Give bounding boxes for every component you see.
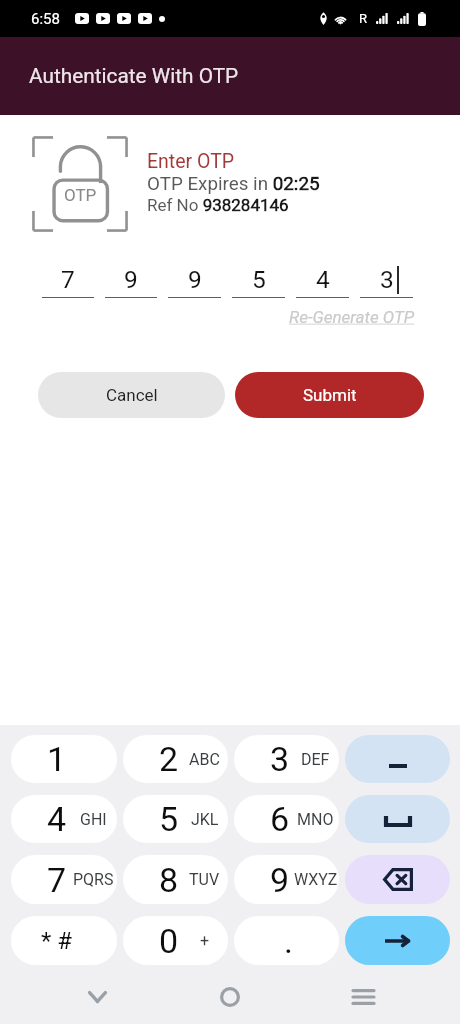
staticText: ABC	[189, 750, 220, 769]
staticText: 9	[124, 265, 138, 294]
button[interactable]: 0	[123, 916, 228, 965]
staticText: 5	[159, 799, 179, 839]
button[interactable]: 7	[11, 855, 117, 904]
button[interactable]: Enter	[345, 916, 450, 965]
staticText: OTP	[64, 185, 97, 205]
staticText: Ref No 938284146	[147, 195, 289, 215]
staticText: Enter OTP	[147, 150, 235, 173]
staticText: 8	[159, 860, 179, 900]
staticText: PQRS	[73, 870, 114, 889]
button[interactable]: Backspace	[345, 855, 450, 904]
button[interactable]: Cancel	[38, 372, 225, 418]
staticText: 0	[159, 921, 179, 961]
staticText: 5	[252, 265, 266, 294]
staticText: 9	[188, 265, 202, 294]
staticText: * #	[41, 927, 73, 955]
staticText: Submit	[303, 385, 357, 405]
button[interactable]: * #	[11, 916, 117, 965]
button[interactable]: 3	[234, 735, 339, 783]
staticText: 6	[270, 799, 290, 839]
button[interactable]: Re-Generate OTP	[289, 307, 415, 327]
button[interactable]: Home	[202, 970, 258, 1024]
button[interactable]: Authenticate With OTP	[0, 37, 460, 115]
button[interactable]: Space	[345, 795, 450, 843]
staticText: 4	[316, 265, 330, 294]
staticText: OTP Expires in 02:25	[147, 173, 320, 195]
staticText: 7	[61, 265, 75, 294]
staticText: MNO	[297, 810, 334, 829]
staticText: Authenticate With OTP	[29, 64, 239, 88]
staticText: 3	[380, 265, 394, 294]
staticText: JKL	[191, 810, 219, 829]
button[interactable]: Hide keyboard	[69, 970, 125, 1024]
staticText: R	[359, 11, 368, 26]
button[interactable]: 8	[123, 855, 228, 904]
button[interactable]: 4	[11, 795, 117, 843]
staticText: DEF	[301, 750, 330, 769]
button[interactable]: Dash	[345, 735, 450, 783]
staticText: 3	[270, 739, 290, 779]
button[interactable]: 2	[123, 735, 228, 783]
staticText: 6:58	[31, 10, 60, 28]
staticText: 4	[47, 799, 67, 839]
button[interactable]: .	[234, 916, 339, 965]
staticText: 2	[159, 739, 179, 779]
staticText: +	[200, 931, 210, 950]
staticText: 1	[47, 739, 67, 779]
button[interactable]: 6	[234, 795, 339, 843]
button[interactable]: Submit	[235, 372, 424, 418]
staticText: Cancel	[106, 385, 158, 405]
button[interactable]: Recent apps	[335, 970, 391, 1024]
staticText: .	[284, 921, 293, 961]
button[interactable]: 1	[11, 735, 117, 783]
button[interactable]: 5	[123, 795, 228, 843]
staticText: TUV	[189, 870, 220, 889]
button[interactable]: 9	[234, 855, 339, 904]
staticText: GHI	[80, 810, 107, 829]
staticText: 9	[270, 860, 290, 900]
staticText: WXYZ	[294, 870, 338, 889]
staticText: Re-Generate OTP	[289, 307, 415, 327]
staticText: 7	[47, 860, 67, 900]
